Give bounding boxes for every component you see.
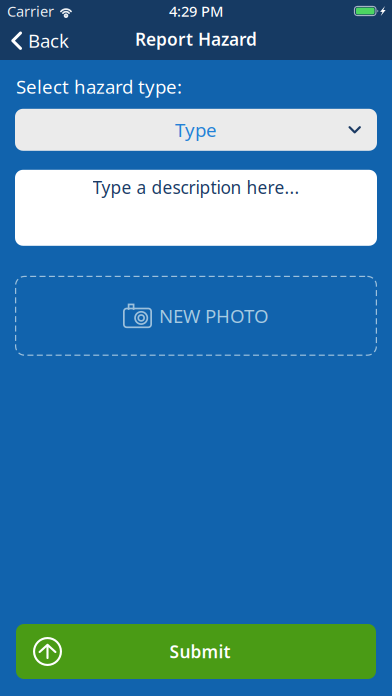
staticText: NEW PHOTO xyxy=(159,303,269,328)
staticText: Report Hazard xyxy=(135,27,257,50)
staticText: Carrier xyxy=(7,1,54,21)
staticText: Submit xyxy=(169,640,230,663)
staticText: Select hazard type: xyxy=(16,74,182,99)
staticText: Type a description here... xyxy=(92,176,299,199)
staticText: 4:29 PM xyxy=(169,1,223,21)
button[interactable]: NEW PHOTO xyxy=(15,276,377,356)
staticText: Back xyxy=(28,28,69,53)
button[interactable]: Submit xyxy=(16,624,376,679)
button[interactable]: Type xyxy=(15,109,377,151)
staticText: Type xyxy=(175,117,217,142)
button[interactable]: Back xyxy=(0,21,79,60)
